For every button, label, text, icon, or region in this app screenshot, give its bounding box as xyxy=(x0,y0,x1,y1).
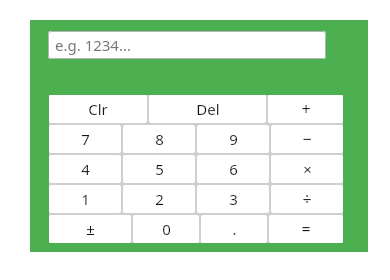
staticText: − xyxy=(302,128,312,150)
button[interactable]: 2 xyxy=(123,185,195,213)
staticText: 9 xyxy=(229,129,238,149)
staticText: 3 xyxy=(229,189,238,209)
staticText: = xyxy=(301,218,311,240)
staticText: 7 xyxy=(81,129,90,149)
staticText: 5 xyxy=(155,159,164,179)
button[interactable]: 5 xyxy=(123,155,195,183)
button[interactable]: e.g. 1234... xyxy=(48,31,326,59)
staticText: + xyxy=(301,98,311,120)
button[interactable]: 8 xyxy=(123,125,195,153)
staticText: . xyxy=(232,219,237,239)
button[interactable]: ÷ xyxy=(271,185,343,213)
button[interactable]: × xyxy=(271,155,343,183)
staticText: 6 xyxy=(229,159,238,179)
staticText: 2 xyxy=(155,189,164,209)
button[interactable]: = xyxy=(269,215,343,243)
button[interactable]: 4 xyxy=(49,155,121,183)
staticText: 8 xyxy=(155,129,164,149)
button[interactable]: 6 xyxy=(197,155,269,183)
button[interactable]: − xyxy=(271,125,343,153)
button[interactable]: Clr xyxy=(49,95,147,123)
staticText: 4 xyxy=(81,159,90,179)
staticText: ÷ xyxy=(302,188,312,210)
button[interactable]: 7 xyxy=(49,125,121,153)
staticText: e.g. 1234... xyxy=(55,35,132,55)
staticText: 0 xyxy=(162,219,171,239)
staticText: ± xyxy=(86,219,95,239)
button[interactable]: ± xyxy=(49,215,131,243)
staticText: Del xyxy=(196,99,220,119)
button[interactable]: 1 xyxy=(49,185,121,213)
button[interactable]: Del xyxy=(149,95,266,123)
staticText: Clr xyxy=(88,99,108,119)
button[interactable]: 3 xyxy=(197,185,269,213)
button[interactable]: + xyxy=(268,95,343,123)
staticText: × xyxy=(303,159,312,179)
button[interactable]: . xyxy=(201,215,267,243)
button[interactable]: 9 xyxy=(197,125,269,153)
staticText: 1 xyxy=(81,189,90,209)
button[interactable]: 0 xyxy=(133,215,199,243)
